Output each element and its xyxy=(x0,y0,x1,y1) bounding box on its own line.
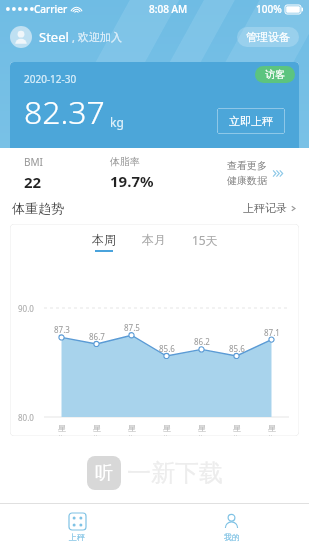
staticText: 82.37 xyxy=(24,90,105,134)
staticText: 期 xyxy=(163,434,171,436)
button[interactable]: 查看更多 xyxy=(227,159,285,187)
staticText: 体重趋势 xyxy=(12,200,64,216)
staticText: 22 xyxy=(24,172,42,192)
button[interactable]: 访客 xyxy=(255,66,295,83)
button[interactable]: 立即上秤 xyxy=(217,108,285,134)
staticText: 87.3 xyxy=(54,324,70,335)
staticText: 我的 xyxy=(224,532,240,542)
staticText: 8:08 AM xyxy=(149,2,188,16)
staticText: 本周 xyxy=(92,232,116,247)
staticText: , xyxy=(72,30,75,45)
staticText: 15天 xyxy=(192,232,218,248)
button[interactable]: 本周 xyxy=(90,232,118,252)
staticText: BMI xyxy=(24,155,43,169)
staticText: 星 xyxy=(268,423,276,433)
staticText: 80.0 xyxy=(18,412,34,423)
staticText: 欢迎加入 xyxy=(78,30,122,44)
staticText: 本月 xyxy=(142,232,166,247)
button[interactable]: 我的 xyxy=(154,504,309,550)
staticText: 一新下载 xyxy=(127,458,223,488)
staticText: 查看更多 xyxy=(227,159,267,172)
staticText: 2020-12-30 xyxy=(24,72,77,86)
button[interactable]: 上秤 xyxy=(0,504,154,550)
staticText: 管理设备 xyxy=(246,30,290,44)
staticText: 86.2 xyxy=(194,336,210,347)
staticText: 期 xyxy=(128,434,136,436)
staticText: 星 xyxy=(58,423,66,433)
staticText: 上秤记录 xyxy=(243,201,287,215)
staticText: 100% xyxy=(256,2,282,16)
staticText: 期 xyxy=(268,434,276,436)
staticText: 19.7% xyxy=(110,171,154,191)
staticText: 星 xyxy=(198,423,206,433)
staticText: 上秤 xyxy=(69,532,85,542)
button[interactable]: 上秤记录 xyxy=(243,201,297,215)
staticText: Carrier xyxy=(34,2,68,16)
button[interactable]: 本月 xyxy=(140,232,168,252)
staticText: 期 xyxy=(93,434,101,436)
staticText: 星 xyxy=(128,423,136,433)
staticText: 86.7 xyxy=(89,331,105,342)
staticText: kg xyxy=(110,114,124,130)
staticText: 期 xyxy=(233,434,241,436)
staticText: 星 xyxy=(163,423,171,433)
button[interactable]: 管理设备 xyxy=(237,27,299,47)
staticText: 期 xyxy=(58,434,66,436)
staticText: 体脂率 xyxy=(110,155,140,168)
staticText: 87.5 xyxy=(124,322,140,333)
staticText: 期 xyxy=(198,434,206,436)
button[interactable]: 15天 xyxy=(190,232,220,253)
staticText: 访客 xyxy=(265,68,285,81)
staticText: 85.6 xyxy=(159,343,175,354)
staticText: 健康数据 xyxy=(227,174,267,187)
staticText: Steel xyxy=(39,28,69,46)
staticText: 90.0 xyxy=(18,303,34,314)
staticText: 听 xyxy=(95,462,113,485)
staticText: 星 xyxy=(93,423,101,433)
staticText: 立即上秤 xyxy=(229,114,273,128)
staticText: 星 xyxy=(233,423,241,433)
staticText: 85.6 xyxy=(229,343,245,354)
staticText: 87.1 xyxy=(264,327,280,338)
